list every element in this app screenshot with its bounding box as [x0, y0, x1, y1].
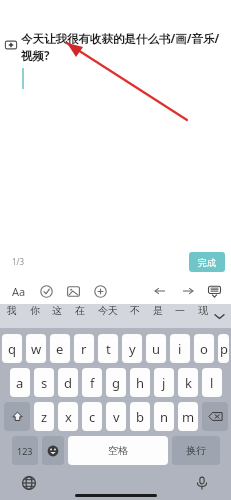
- button[interactable]: 换行: [172, 436, 220, 465]
- button[interactable]: b: [130, 402, 150, 431]
- button[interactable]: l: [202, 368, 222, 397]
- button[interactable]: Add block: [4, 38, 18, 52]
- staticText: f: [90, 374, 95, 392]
- button[interactable]: v: [106, 402, 126, 431]
- staticText: n: [160, 408, 169, 426]
- button[interactable]: t: [98, 334, 118, 363]
- staticText: j: [162, 374, 166, 392]
- staticText: r: [81, 340, 87, 358]
- staticText: Aa: [12, 284, 26, 299]
- staticText: z: [41, 408, 48, 426]
- staticText: p: [220, 340, 228, 358]
- button[interactable]: 我: [6, 304, 18, 317]
- button[interactable]: j: [154, 368, 174, 397]
- button[interactable]: e: [50, 334, 70, 363]
- button[interactable]: [4, 402, 30, 431]
- staticText: 在: [75, 304, 85, 317]
- staticText: d: [64, 374, 72, 392]
- button[interactable]: p: [218, 334, 229, 363]
- staticText: g: [112, 374, 120, 392]
- staticText: 今天: [98, 304, 118, 317]
- staticText: o: [200, 340, 208, 358]
- button[interactable]: 不: [129, 304, 141, 317]
- staticText: s: [41, 374, 48, 392]
- staticText: h: [136, 374, 145, 392]
- button[interactable]: [42, 436, 64, 465]
- staticText: m: [182, 408, 195, 426]
- staticText: 今天让我很有收获的是什么书/画/音乐/视频?: [21, 31, 226, 63]
- button[interactable]: n: [154, 402, 174, 431]
- button[interactable]: Change language: [18, 472, 40, 494]
- button[interactable]: u: [146, 334, 166, 363]
- staticText: i: [178, 340, 182, 358]
- button[interactable]: 空格: [68, 436, 168, 465]
- staticText: y: [129, 340, 136, 358]
- button[interactable]: Text style: [8, 280, 30, 302]
- staticText: 这: [52, 304, 62, 317]
- button[interactable]: 123: [12, 436, 38, 465]
- button[interactable]: h: [130, 368, 150, 397]
- staticText: 换行: [186, 444, 206, 457]
- button[interactable]: 是: [152, 304, 164, 317]
- staticText: k: [185, 374, 192, 392]
- staticText: 1/3: [12, 256, 25, 267]
- staticText: e: [56, 340, 64, 358]
- button[interactable]: 这: [51, 304, 63, 317]
- button[interactable]: Checklist: [35, 280, 57, 302]
- staticText: 是: [153, 304, 163, 317]
- button[interactable]: 现: [197, 304, 209, 317]
- button[interactable]: d: [58, 368, 78, 397]
- button[interactable]: y: [122, 334, 142, 363]
- staticText: 不: [130, 304, 140, 317]
- button[interactable]: 在: [74, 304, 86, 317]
- staticText: 你: [30, 304, 40, 317]
- button[interactable]: k: [178, 368, 198, 397]
- button[interactable]: x: [58, 402, 78, 431]
- staticText: u: [152, 340, 161, 358]
- button[interactable]: o: [194, 334, 214, 363]
- button[interactable]: Hide keyboard: [203, 280, 225, 302]
- button[interactable]: c: [82, 402, 102, 431]
- staticText: a: [16, 374, 24, 392]
- button[interactable]: i: [170, 334, 190, 363]
- button[interactable]: 今天: [97, 304, 119, 317]
- staticText: q: [8, 340, 16, 358]
- staticText: 123: [17, 445, 33, 457]
- button[interactable]: m: [178, 402, 198, 431]
- button[interactable]: Voice input: [191, 472, 213, 494]
- button[interactable]: q: [2, 334, 22, 363]
- button[interactable]: g: [106, 368, 126, 397]
- button[interactable]: Redo: [177, 280, 199, 302]
- button[interactable]: s: [34, 368, 54, 397]
- button[interactable]: a: [10, 368, 30, 397]
- button[interactable]: Undo: [149, 280, 171, 302]
- staticText: 空格: [108, 444, 128, 457]
- button[interactable]: z: [34, 402, 54, 431]
- button[interactable]: [202, 402, 228, 431]
- staticText: 一: [175, 304, 185, 317]
- button[interactable]: Insert image: [62, 280, 84, 302]
- button[interactable]: 完成: [189, 252, 225, 272]
- button[interactable]: f: [82, 368, 102, 397]
- staticText: 我: [7, 304, 17, 317]
- staticText: 现: [198, 304, 208, 317]
- button[interactable]: 你: [29, 304, 41, 317]
- staticText: 完成: [198, 257, 216, 268]
- staticText: l: [210, 374, 214, 392]
- staticText: b: [136, 408, 144, 426]
- button[interactable]: Add: [89, 280, 111, 302]
- button[interactable]: More suggestions: [211, 308, 227, 324]
- staticText: w: [31, 340, 42, 358]
- staticText: v: [113, 408, 120, 426]
- button[interactable]: 一: [174, 304, 186, 317]
- staticText: c: [89, 408, 96, 426]
- button[interactable]: w: [26, 334, 46, 363]
- staticText: t: [106, 340, 111, 358]
- staticText: x: [65, 408, 72, 426]
- button[interactable]: r: [74, 334, 94, 363]
